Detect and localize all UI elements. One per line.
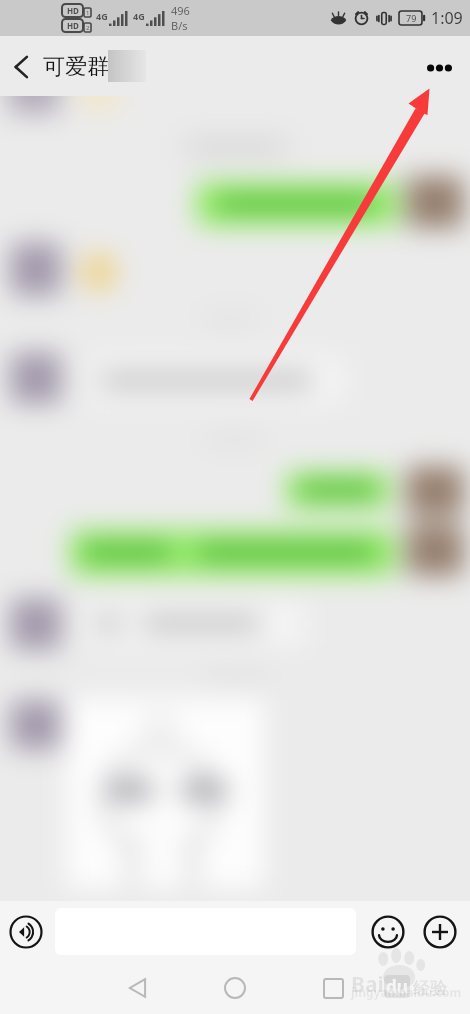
staticText: 4G [96, 10, 108, 22]
button[interactable]: Recents [284, 962, 382, 1014]
button[interactable]: Home [186, 962, 284, 1014]
staticText: HD [67, 20, 79, 31]
staticText: 4G [133, 10, 145, 22]
staticText: 可爱群 [43, 53, 109, 81]
staticText: 经验 [413, 978, 447, 999]
staticText: B/s [171, 18, 188, 33]
button[interactable]: More [420, 912, 460, 952]
staticText: 1 [86, 9, 90, 17]
staticText: 79 [406, 12, 417, 24]
staticText: HD [67, 5, 79, 16]
button[interactable]: Back [0, 44, 44, 88]
staticText: 496 [171, 3, 190, 18]
button[interactable]: Emoji [368, 912, 408, 952]
button[interactable]: More options [416, 43, 462, 89]
staticText: 2 [86, 24, 90, 32]
staticText: 1:09 [431, 7, 463, 29]
staticText: du [386, 975, 408, 998]
button[interactable]: Voice input [6, 912, 46, 952]
button[interactable]: Back [88, 962, 186, 1014]
staticText: Bai [351, 970, 384, 999]
staticText: jingyan.baidu.com [351, 984, 462, 1000]
